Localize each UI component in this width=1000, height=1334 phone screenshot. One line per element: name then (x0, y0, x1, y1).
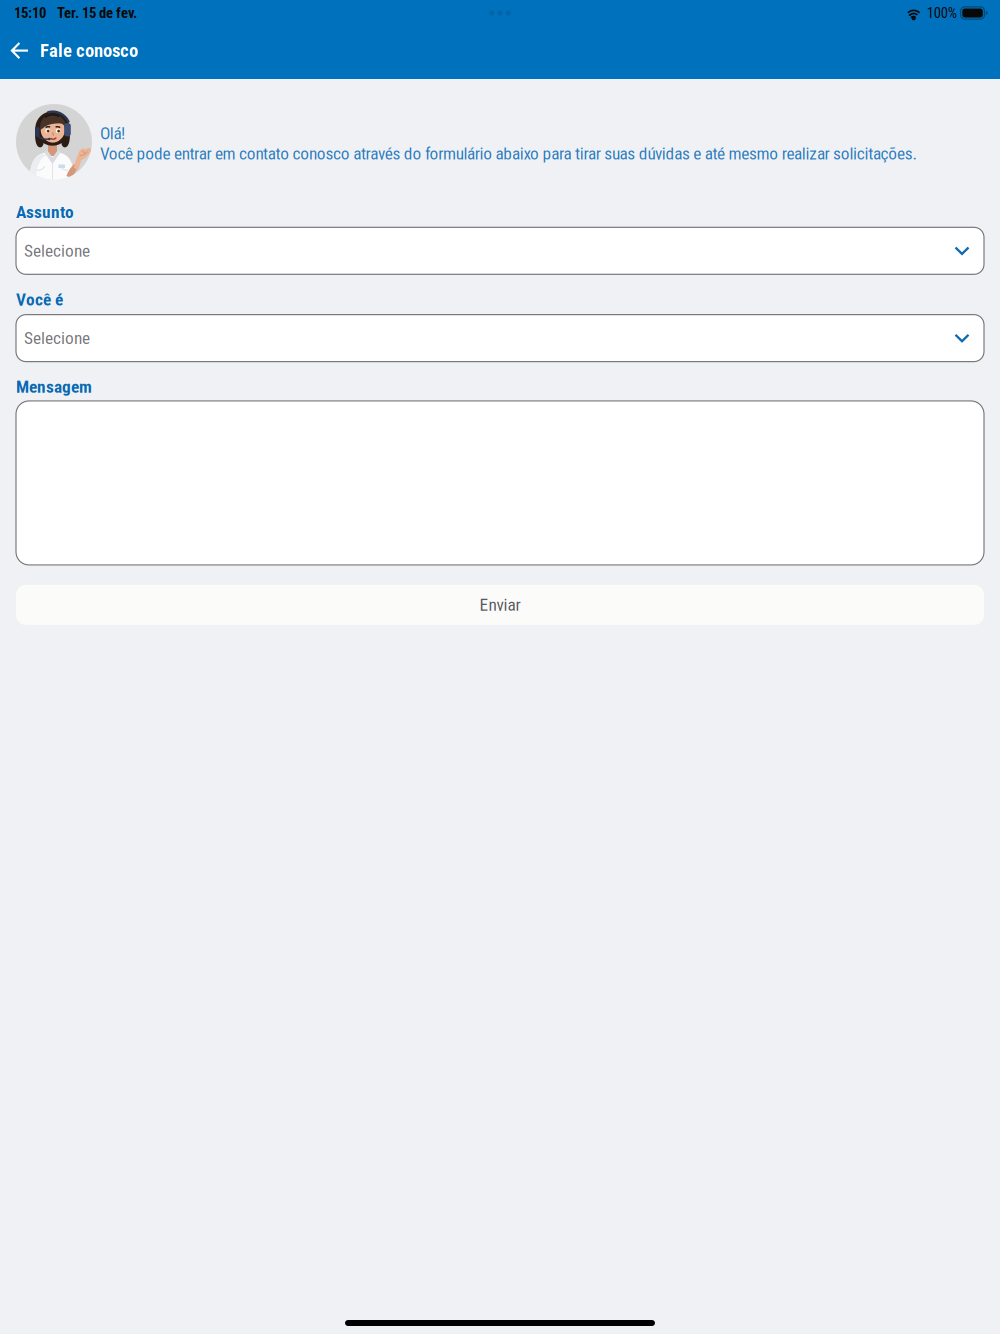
staticText: 15:10 (14, 4, 46, 22)
staticText: Ter. 15 de fev. (57, 4, 137, 22)
staticText: Selecione (24, 241, 90, 261)
staticText: Selecione (24, 328, 90, 348)
staticText: Olá! (100, 123, 125, 143)
button[interactable]: Selecione (16, 315, 984, 362)
button[interactable]: Selecione (16, 227, 984, 274)
staticText: Fale conosco (40, 40, 138, 61)
button[interactable]: Enviar (16, 585, 984, 625)
staticText: Você é (16, 289, 63, 310)
staticText: Assunto (16, 202, 74, 222)
staticText: Você pode entrar em contato conosco atra… (100, 143, 917, 164)
button[interactable]: Back (0, 27, 40, 73)
staticText: Enviar (479, 595, 520, 615)
staticText: Mensagem (16, 377, 92, 397)
staticText: 100% (927, 4, 957, 22)
